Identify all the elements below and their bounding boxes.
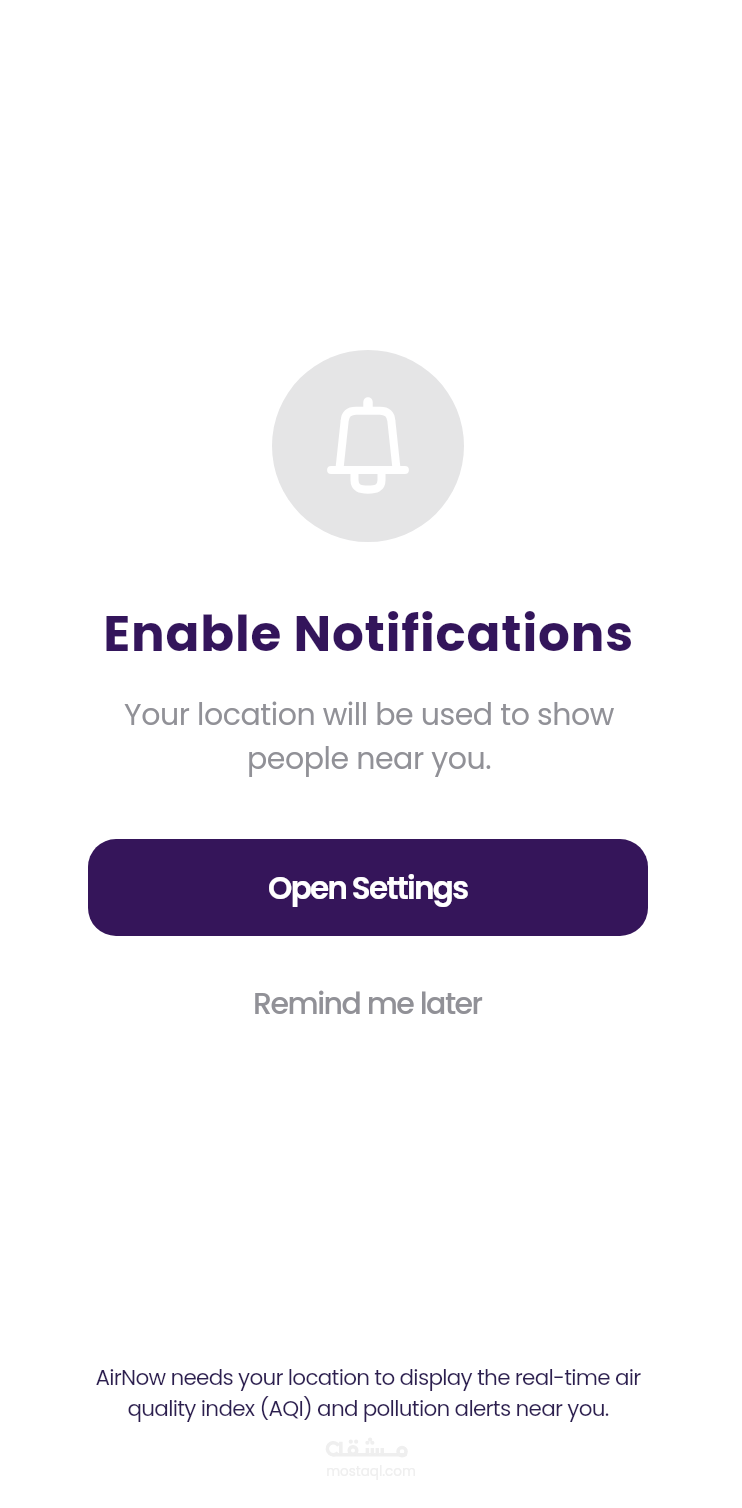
other: mostaql logo (326, 1436, 416, 1462)
staticText: Remind me later (253, 983, 482, 1025)
staticText: Open Settings (268, 866, 468, 909)
staticText: AirNow needs your location to display th… (63, 1362, 673, 1424)
other: Notifications (327, 397, 409, 495)
staticText: mostaql.com (251, 1462, 491, 1481)
staticText: Your location will be used to show peopl… (89, 694, 649, 779)
button[interactable]: Remind me later (217, 975, 517, 1033)
button[interactable]: Open Settings (88, 839, 648, 936)
staticText: Enable Notifications (103, 599, 634, 669)
